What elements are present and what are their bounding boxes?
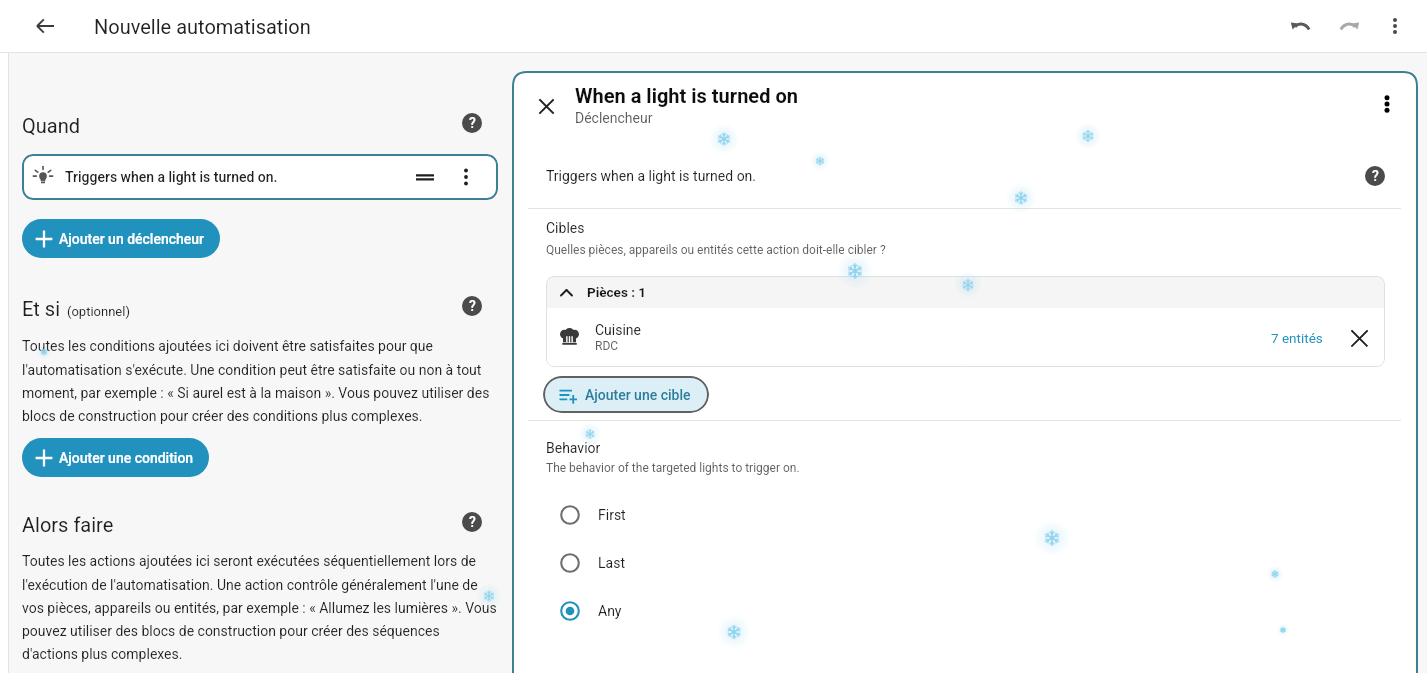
button[interactable]: Rétablir	[1327, 4, 1371, 48]
staticText: (optionnel)	[67, 304, 130, 319]
button[interactable]: Pièces : 1	[546, 276, 1385, 308]
staticText: Any	[598, 603, 622, 619]
button[interactable]: Aide	[1365, 166, 1385, 186]
staticText: Behavior	[546, 440, 601, 456]
staticText: ?	[469, 514, 476, 530]
staticText: Quand	[22, 114, 80, 137]
button[interactable]: Triggers when a light is turned on.	[22, 154, 498, 200]
staticText: Ajouter une cible	[585, 387, 691, 403]
staticText: Cuisine	[595, 322, 642, 338]
button[interactable]: Ajouter une condition	[22, 438, 209, 477]
staticText: 7 entités	[1271, 330, 1323, 346]
staticText: Toutes les conditions ajoutées ici doive…	[22, 338, 498, 424]
staticText: Pièces : 1	[587, 284, 647, 300]
staticText: Et si	[22, 297, 61, 320]
staticText: Ajouter un déclencheur	[59, 231, 205, 247]
staticText: Déclencheur	[575, 110, 653, 126]
button[interactable]: First	[546, 491, 652, 539]
staticText: Last	[598, 555, 625, 571]
button[interactable]: Cuisine	[546, 308, 1385, 367]
staticText: ?	[469, 298, 476, 314]
button[interactable]: Ajouter une cible	[543, 376, 709, 413]
staticText: When a light is turned on	[575, 84, 798, 107]
button[interactable]: Ajouter un déclencheur	[22, 219, 220, 258]
staticText: Ajouter une condition	[59, 450, 194, 466]
button[interactable]: Aide	[462, 296, 482, 316]
staticText: ?	[1372, 168, 1379, 184]
button[interactable]: Fermer	[533, 93, 559, 119]
button[interactable]: Last	[546, 539, 651, 587]
staticText: Triggers when a light is turned on.	[65, 169, 278, 185]
staticText: Nouvelle automatisation	[94, 15, 311, 38]
button[interactable]: Annuler	[1279, 4, 1323, 48]
staticText: Alors faire	[22, 513, 114, 536]
staticText: RDC	[595, 339, 619, 353]
staticText: Cibles	[546, 220, 585, 236]
staticText: First	[598, 507, 626, 523]
button[interactable]: Plus d'options	[1373, 4, 1417, 48]
staticText: ?	[469, 115, 476, 131]
staticText: Triggers when a light is turned on.	[546, 168, 757, 184]
staticText: The behavior of the targeted lights to t…	[546, 461, 800, 475]
button[interactable]: Any	[546, 587, 648, 635]
button[interactable]: Aide	[462, 113, 482, 133]
staticText: Quelles pièces, appareils ou entités cet…	[546, 243, 886, 257]
button[interactable]: Plus d'options	[1377, 94, 1397, 114]
button[interactable]: Supprimer	[1347, 326, 1371, 350]
button[interactable]: Aide	[462, 512, 482, 532]
button[interactable]: Retour	[25, 6, 65, 46]
staticText: Toutes les actions ajoutées ici seront e…	[22, 553, 498, 662]
